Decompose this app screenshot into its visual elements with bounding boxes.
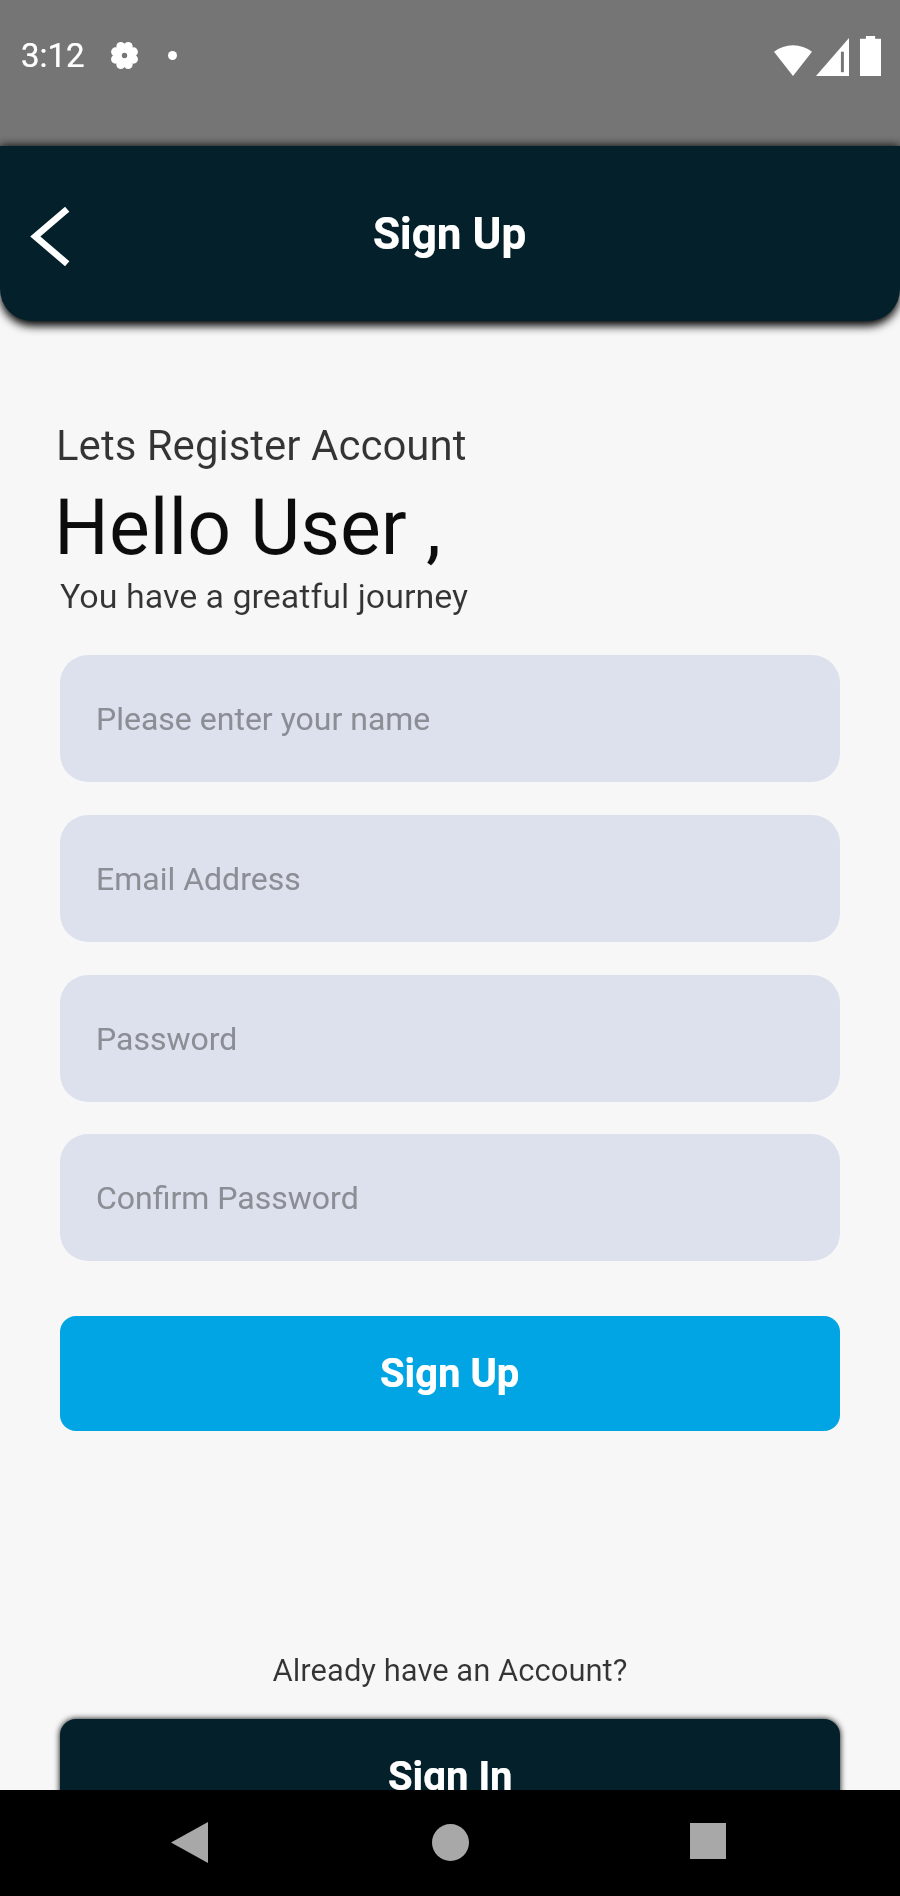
button[interactable]: Confirm Password xyxy=(60,1134,840,1261)
other: Mobile signal xyxy=(816,38,849,76)
staticText: Please enter your name xyxy=(96,700,431,738)
other: Settings xyxy=(111,42,138,69)
button[interactable]: Back xyxy=(134,1789,244,1895)
other: Wi-Fi xyxy=(774,38,812,76)
other: Battery xyxy=(860,36,881,76)
button[interactable]: Back xyxy=(0,186,100,286)
staticText: Sign Up xyxy=(373,208,527,260)
button[interactable]: Please enter your name xyxy=(60,655,840,782)
staticText: Sign Up xyxy=(380,1350,520,1397)
button[interactable]: Sign In xyxy=(60,1719,840,1834)
button[interactable]: Sign Up xyxy=(60,1316,840,1431)
staticText: 3:12 xyxy=(21,36,85,75)
staticText: Sign In xyxy=(388,1753,513,1800)
staticText: Email Address xyxy=(96,860,301,898)
staticText: Lets Register Account xyxy=(56,421,467,470)
button[interactable]: Password xyxy=(60,975,840,1102)
staticText: Already have an Account? xyxy=(0,1652,900,1688)
button[interactable]: Recent apps xyxy=(653,1788,763,1894)
staticText: Password xyxy=(96,1020,238,1058)
button[interactable]: Email Address xyxy=(60,815,840,942)
staticText: Confirm Password xyxy=(96,1179,359,1217)
staticText: Hello User , xyxy=(54,483,442,573)
button[interactable]: Home xyxy=(395,1789,505,1895)
staticText: You have a greatful journey xyxy=(60,576,469,616)
